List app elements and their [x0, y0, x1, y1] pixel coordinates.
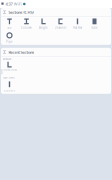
staticText: Sections (CHS) — [8, 10, 33, 15]
staticText: Pipe — [6, 40, 13, 43]
staticText: Angle — [39, 26, 48, 29]
staticText: FLAT BAR — [3, 76, 15, 79]
button[interactable]: Tube — [86, 17, 103, 31]
staticText: L100x100x10 — [1, 68, 18, 75]
staticText: WiFi — [14, 1, 22, 7]
button[interactable]: Angle — [35, 17, 52, 31]
staticText: Recent Sections — [8, 49, 34, 55]
staticText: 4:37 — [6, 1, 13, 7]
button[interactable]: Channel — [52, 17, 69, 31]
staticText: Flat Bar — [73, 26, 82, 29]
button[interactable]: Tee — [1, 17, 18, 31]
button[interactable]: L100x100x10 — [1, 61, 18, 75]
button[interactable]: Column — [18, 17, 35, 31]
staticText: FL 80x10 — [3, 89, 15, 92]
button[interactable]: Flat Bar — [69, 17, 86, 31]
staticText: Tee — [7, 26, 12, 29]
staticText: Column — [21, 26, 32, 29]
staticText: Channel — [54, 26, 66, 29]
button[interactable]: Pipe — [1, 31, 18, 45]
button[interactable]: FL 80x10 — [1, 80, 18, 94]
staticText: ANGLE — [3, 57, 11, 61]
staticText: Tube — [91, 26, 98, 29]
